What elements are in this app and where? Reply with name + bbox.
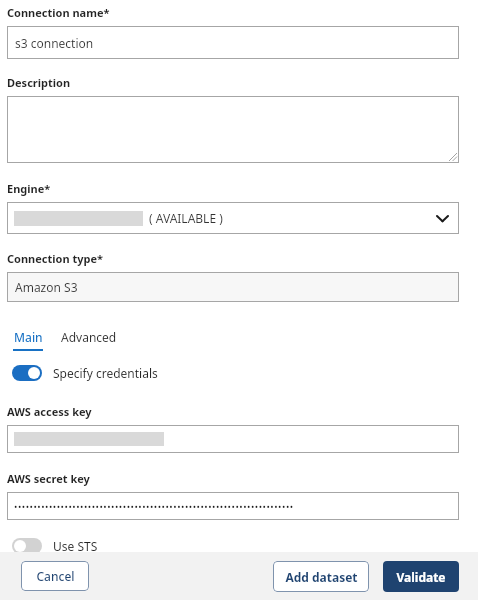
staticText: Specify credentials <box>53 365 158 381</box>
button[interactable]: Amazon S3 <box>7 272 459 302</box>
staticText: Main <box>14 329 43 345</box>
staticText: AWS secret key <box>7 471 90 486</box>
button[interactable] <box>7 96 459 163</box>
staticText: Connection type* <box>7 251 103 266</box>
button[interactable]: ••••••••••••••••••••••••••••••••••••••••… <box>7 492 459 520</box>
button[interactable]: ( AVAILABLE ) <box>7 202 459 234</box>
button[interactable]: Cancel <box>21 561 89 591</box>
button[interactable]: Use STS <box>12 536 98 556</box>
staticText: Validate <box>396 569 446 585</box>
staticText: AWS access key <box>7 404 92 419</box>
staticText: Use STS <box>53 538 98 554</box>
staticText: Amazon S3 <box>15 279 78 295</box>
staticText: Advanced <box>61 329 117 345</box>
button[interactable] <box>7 425 459 453</box>
button[interactable]: Advanced <box>61 329 117 345</box>
button[interactable]: Main <box>13 329 43 351</box>
button[interactable]: Specify credentials <box>12 363 158 383</box>
staticText: Description <box>7 75 71 90</box>
staticText: Cancel <box>36 568 75 584</box>
staticText: Add dataset <box>285 569 358 585</box>
button[interactable]: Validate <box>383 561 459 592</box>
staticText: s3 connection <box>15 35 94 51</box>
button[interactable]: Add dataset <box>273 561 369 592</box>
staticText: ••••••••••••••••••••••••••••••••••••••••… <box>14 500 294 512</box>
other: Open engine dropdown <box>437 215 448 222</box>
staticText: ( AVAILABLE ) <box>149 210 223 226</box>
staticText: Engine* <box>7 181 51 196</box>
button[interactable]: s3 connection <box>7 26 459 59</box>
staticText: Connection name* <box>7 5 110 20</box>
